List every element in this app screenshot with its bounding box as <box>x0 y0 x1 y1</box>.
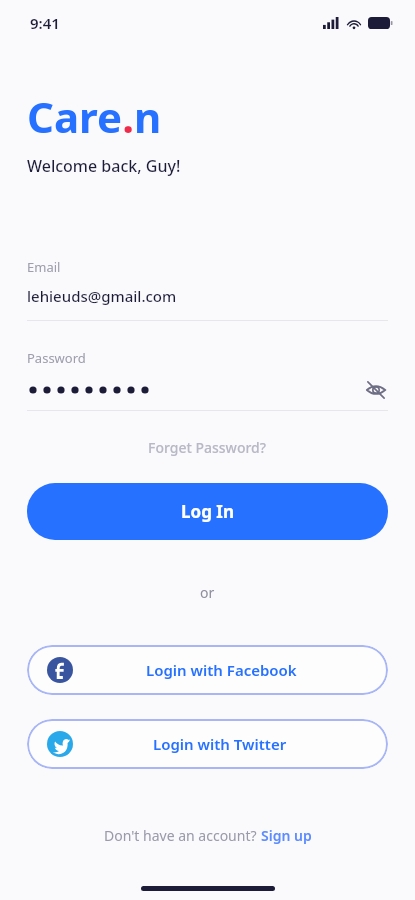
staticText: or <box>200 583 215 602</box>
button[interactable]: Login with Facebook <box>27 645 388 695</box>
button[interactable]: Sign up <box>261 826 312 845</box>
staticText: 9:41 <box>30 13 60 33</box>
staticText: Don't have an account? <box>104 826 261 845</box>
staticText: Welcome back, Guy! <box>27 155 181 177</box>
staticText: Care.n <box>27 88 162 145</box>
staticText: Login with Twitter <box>153 734 287 754</box>
button[interactable]: Login with Twitter <box>27 719 388 769</box>
staticText: Password <box>27 349 86 367</box>
staticText: lehieuds@gmail.com <box>27 286 177 306</box>
staticText: Log In <box>181 500 234 523</box>
staticText: Email <box>27 258 61 276</box>
staticText: Forget Password? <box>148 438 267 457</box>
staticText: Login with Facebook <box>146 660 297 680</box>
button[interactable]: Toggle password visibility <box>358 372 394 408</box>
staticText: Sign up <box>261 826 312 845</box>
button[interactable]: Log In <box>27 483 388 540</box>
button[interactable]: Forget Password? <box>140 436 275 459</box>
